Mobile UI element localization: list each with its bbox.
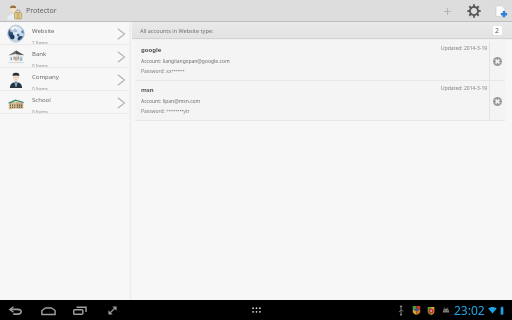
staticText: msn (141, 86, 154, 94)
staticText: Company (32, 73, 59, 81)
button[interactable]: google (135, 41, 505, 81)
staticText: Updated: 2014-3-19 (441, 85, 488, 92)
staticText: Website (32, 27, 55, 35)
button[interactable]: Company (0, 68, 129, 91)
staticText: Password: xx••••••• (141, 68, 185, 75)
staticText: All accounts in Website type: (140, 27, 214, 34)
staticText: Updated: 2014-3-19 (441, 45, 488, 52)
button[interactable]: New account (488, 0, 512, 22)
button[interactable]: School (0, 91, 129, 114)
staticText: 0 Items (32, 63, 48, 68)
staticText: 0 Items (32, 109, 48, 114)
staticText: google (141, 46, 162, 54)
button[interactable]: Recents (69, 300, 91, 320)
staticText: School (32, 96, 51, 104)
staticText: Protector (26, 6, 57, 16)
staticText: Account: liangliangxpan@google.com (141, 58, 230, 65)
staticText: 0 Items (32, 86, 48, 91)
button[interactable]: Home (37, 300, 59, 320)
staticText: Account: lipan@msn.com (141, 98, 201, 105)
button[interactable]: msn (135, 81, 505, 121)
button[interactable]: Delete (490, 81, 505, 121)
staticText: 23:02 (454, 302, 485, 318)
button[interactable]: Back (5, 300, 27, 320)
button[interactable]: Add (435, 0, 459, 22)
button[interactable]: Delete (490, 41, 505, 81)
button[interactable]: Bank (0, 45, 129, 68)
button[interactable]: Settings (461, 0, 487, 22)
staticText: Password: •••••••••ytr (141, 108, 190, 115)
button[interactable]: Apps (246, 300, 266, 320)
staticText: Bank (32, 50, 47, 58)
staticText: 2 (495, 26, 500, 35)
button[interactable]: Fullscreen (101, 300, 123, 320)
staticText: 2 Items (32, 40, 48, 45)
button[interactable]: Website (0, 22, 129, 45)
